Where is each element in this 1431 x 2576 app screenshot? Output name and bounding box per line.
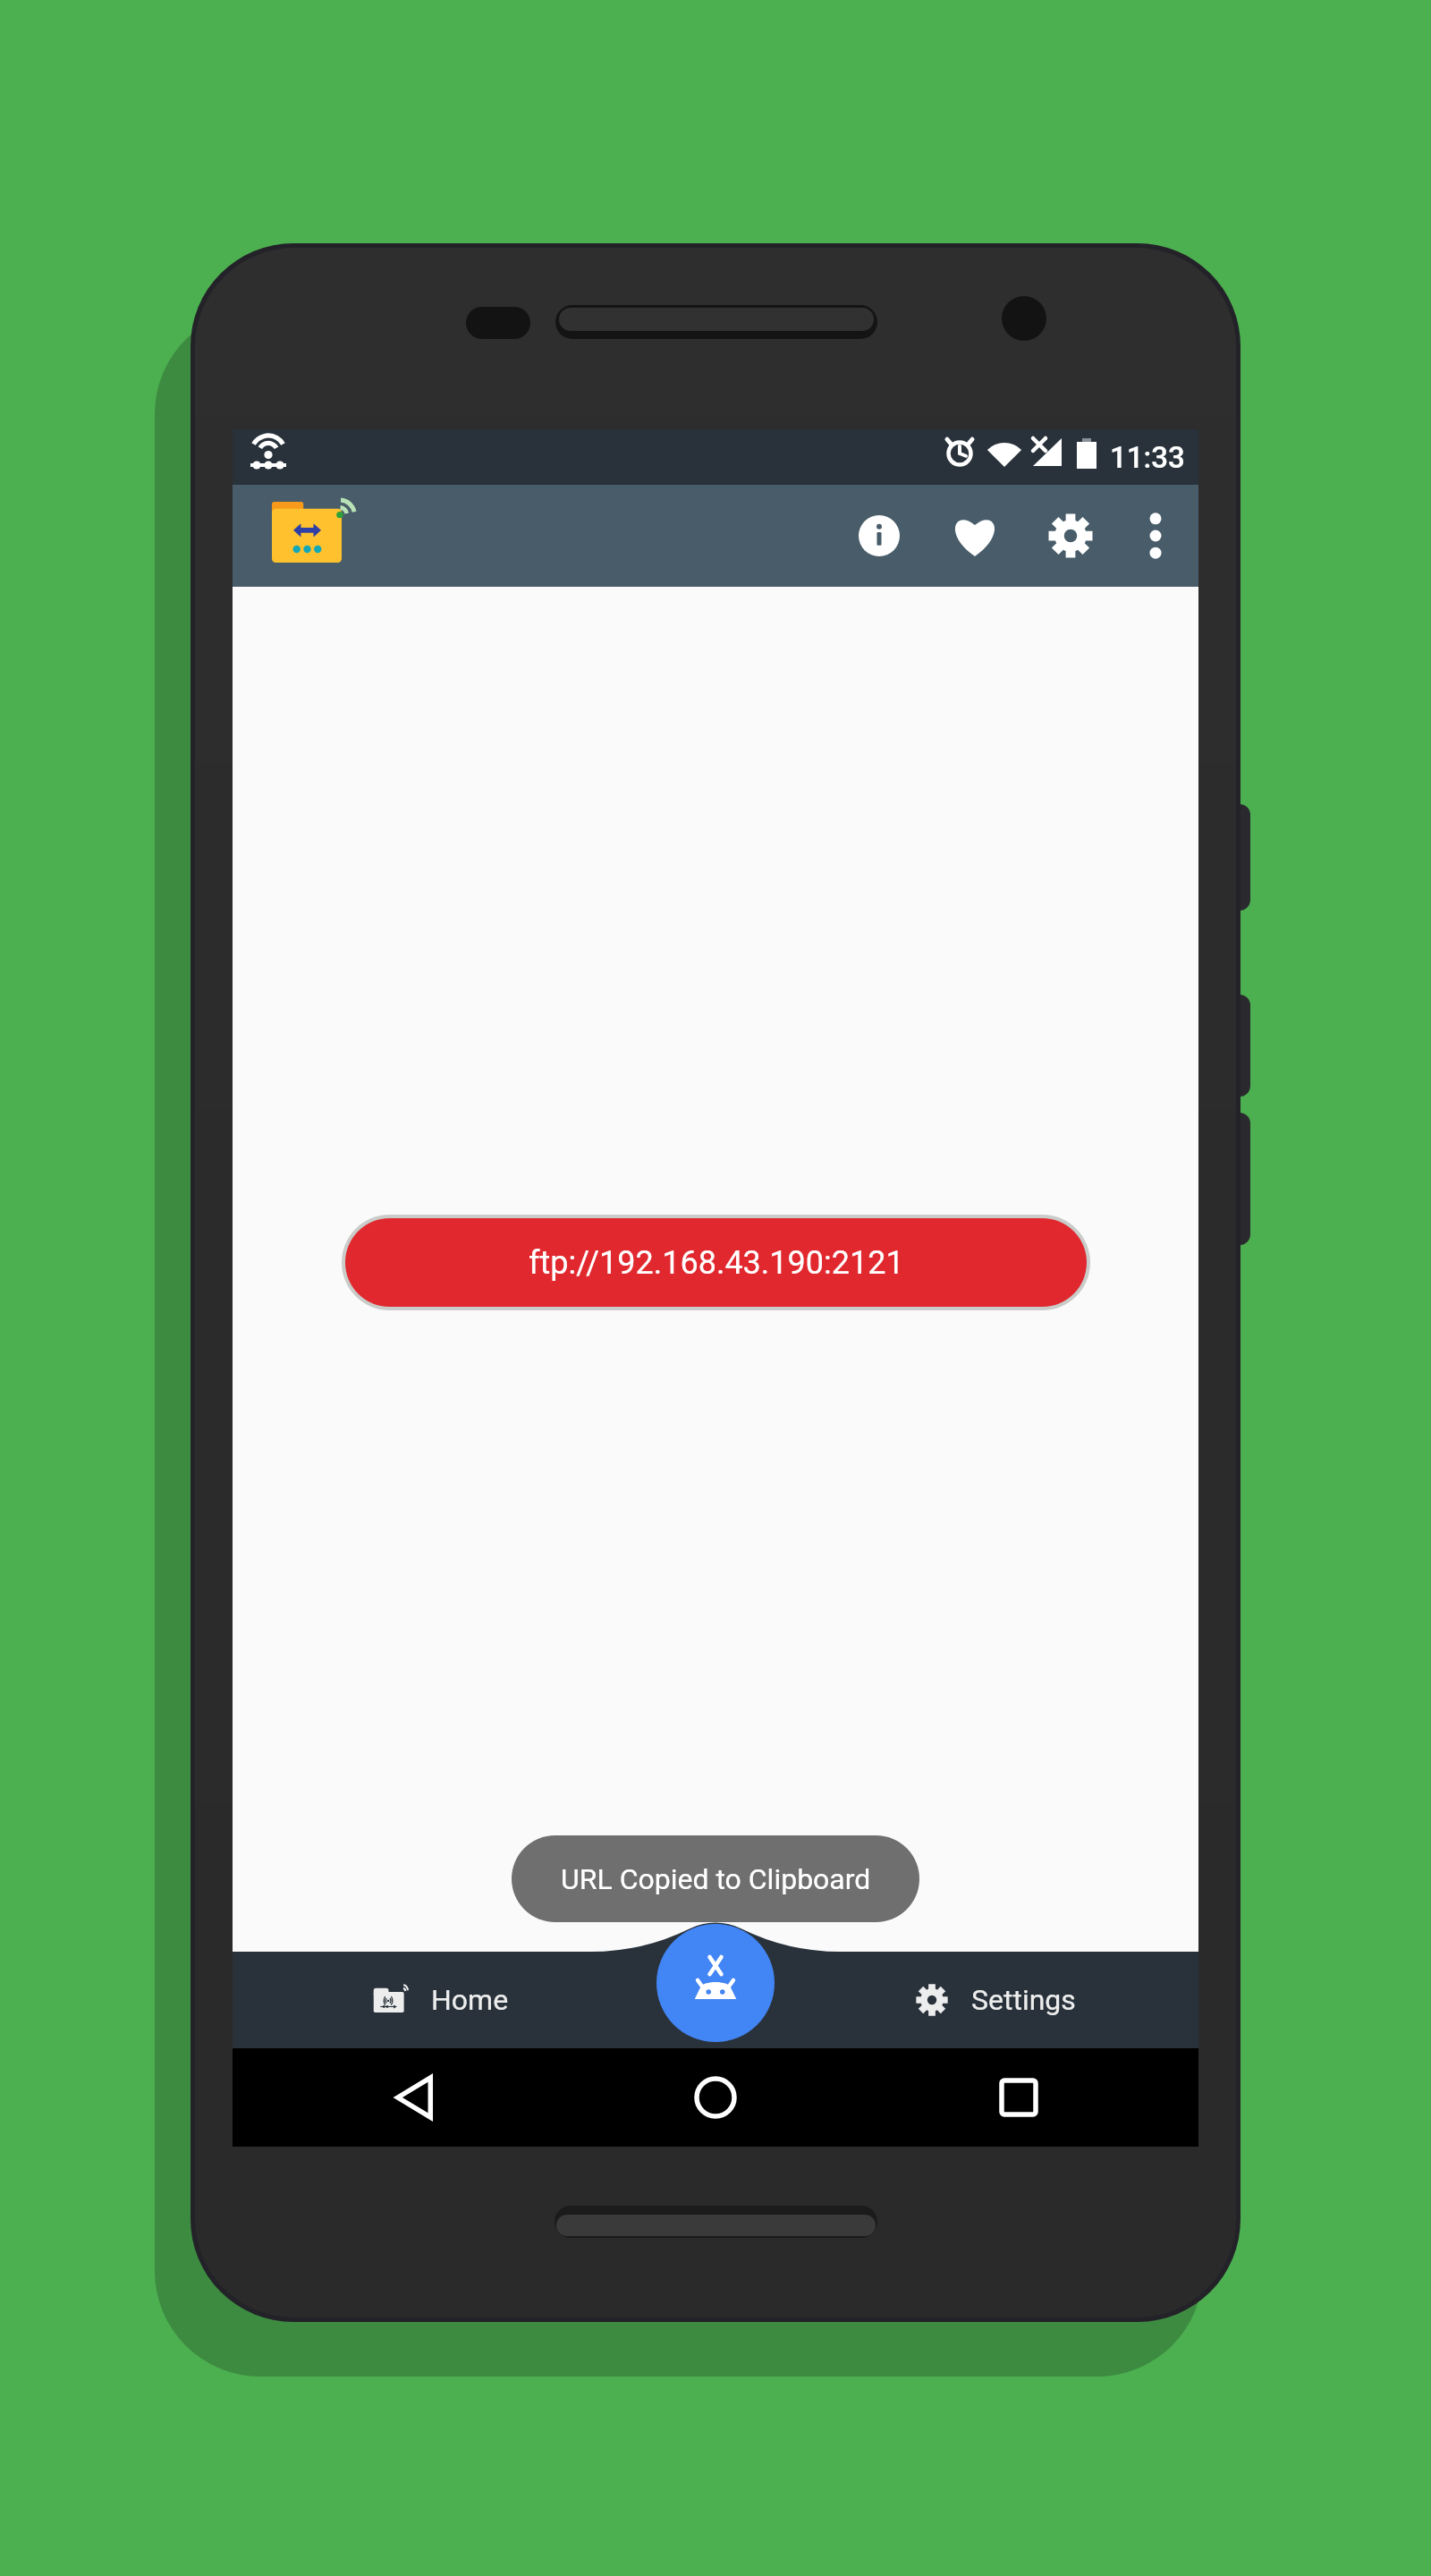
button[interactable]: App icon — [256, 486, 356, 586]
button[interactable]: More options — [1113, 493, 1198, 579]
staticText: Home — [431, 1983, 509, 2017]
button[interactable]: Home — [309, 1952, 569, 2048]
button[interactable]: Recents — [970, 2048, 1068, 2147]
button[interactable]: Home — [666, 2048, 765, 2147]
button[interactable]: Info — [836, 493, 922, 579]
button[interactable]: Stop server — [656, 1924, 775, 2042]
staticText: URL Copied to Clipboard — [561, 1862, 871, 1896]
button[interactable]: Settings — [1028, 493, 1113, 579]
button[interactable]: Favorite — [932, 493, 1018, 579]
button[interactable]: Settings — [853, 1952, 1122, 2048]
staticText: Settings — [971, 1983, 1076, 2017]
staticText: 11:33 — [1110, 440, 1185, 475]
button[interactable]: Back — [366, 2048, 464, 2147]
staticText: ftp://192.168.43.190:2121 — [529, 1244, 904, 1282]
button[interactable]: ftp://192.168.43.190:2121 — [345, 1218, 1087, 1307]
